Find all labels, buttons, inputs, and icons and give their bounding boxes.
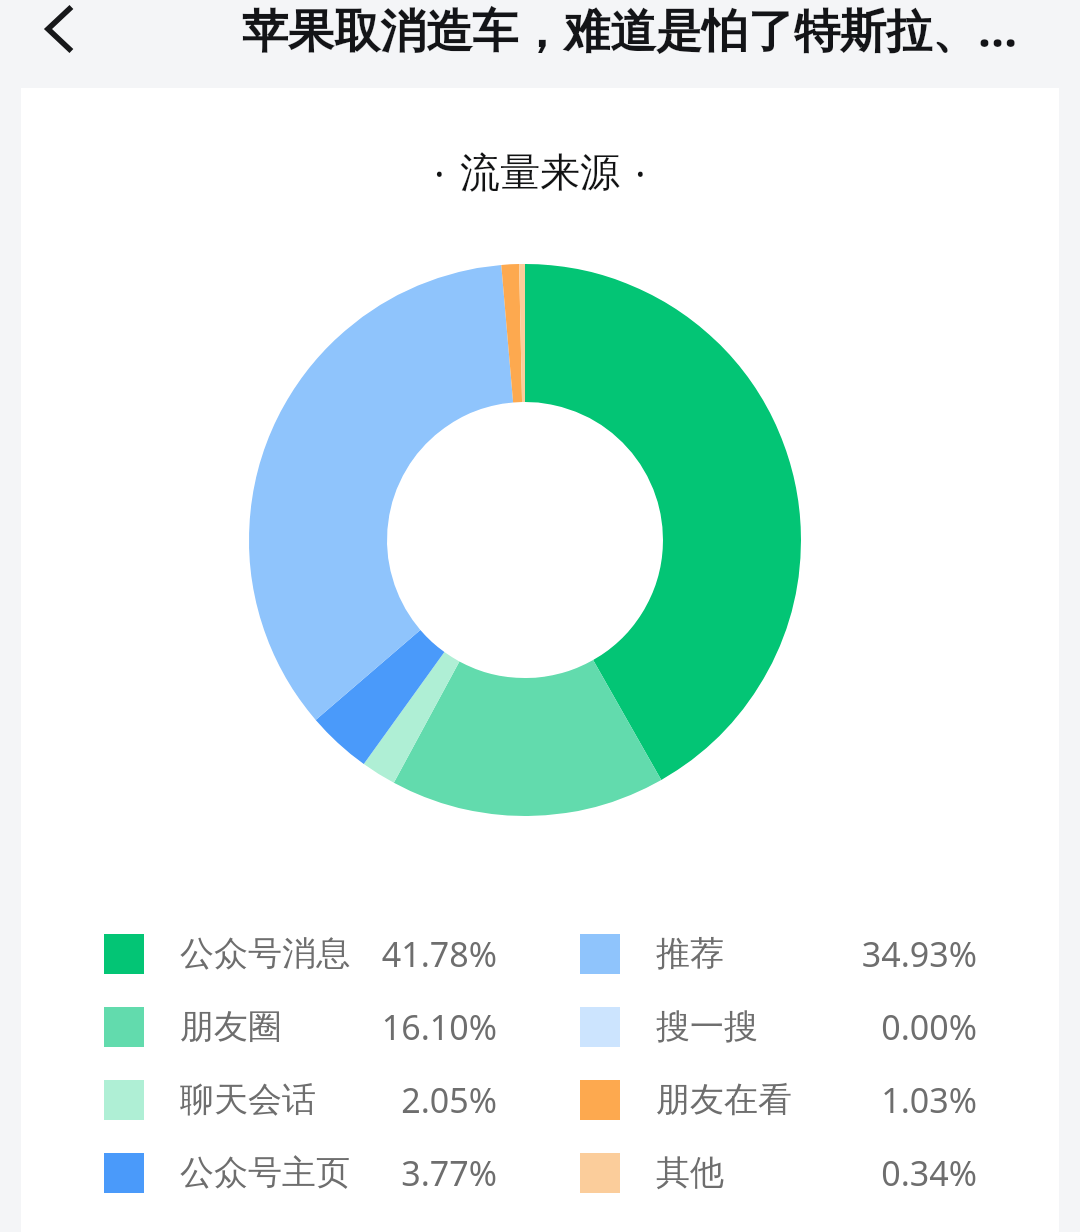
button[interactable]: 朋友圈 [104, 990, 497, 1063]
staticText: 41.78% [381, 931, 497, 977]
staticText: 0.00% [881, 1004, 977, 1050]
staticText: 苹果取消造车，难道是怕了特斯拉、… [242, 0, 1018, 61]
staticText: 公众号主页 [180, 1151, 350, 1194]
staticText: 34.93% [861, 931, 977, 977]
staticText: · [635, 145, 646, 199]
staticText: 朋友在看 [656, 1078, 792, 1121]
staticText: · [434, 145, 445, 199]
button[interactable]: 其他 [580, 1136, 977, 1209]
staticText: 推荐 [656, 932, 724, 975]
staticText: 流量来源 [460, 147, 620, 197]
staticText: 搜一搜 [656, 1005, 758, 1048]
button[interactable]: 公众号主页 [104, 1136, 497, 1209]
button[interactable]: 搜一搜 [580, 990, 977, 1063]
button[interactable]: 朋友在看 [580, 1063, 977, 1136]
button[interactable]: 推荐 [580, 917, 977, 990]
staticText: 1.03% [881, 1077, 977, 1123]
staticText: 0.34% [881, 1150, 977, 1196]
staticText: 3.77% [401, 1150, 497, 1196]
staticText: 其他 [656, 1151, 724, 1194]
button[interactable]: Back [0, 0, 120, 58]
staticText: 聊天会话 [180, 1078, 316, 1121]
staticText: 朋友圈 [180, 1005, 282, 1048]
staticText: 2.05% [401, 1077, 497, 1123]
button[interactable]: 聊天会话 [104, 1063, 497, 1136]
staticText: 公众号消息 [180, 932, 350, 975]
staticText: 16.10% [381, 1004, 497, 1050]
button[interactable]: 公众号消息 [104, 917, 497, 990]
